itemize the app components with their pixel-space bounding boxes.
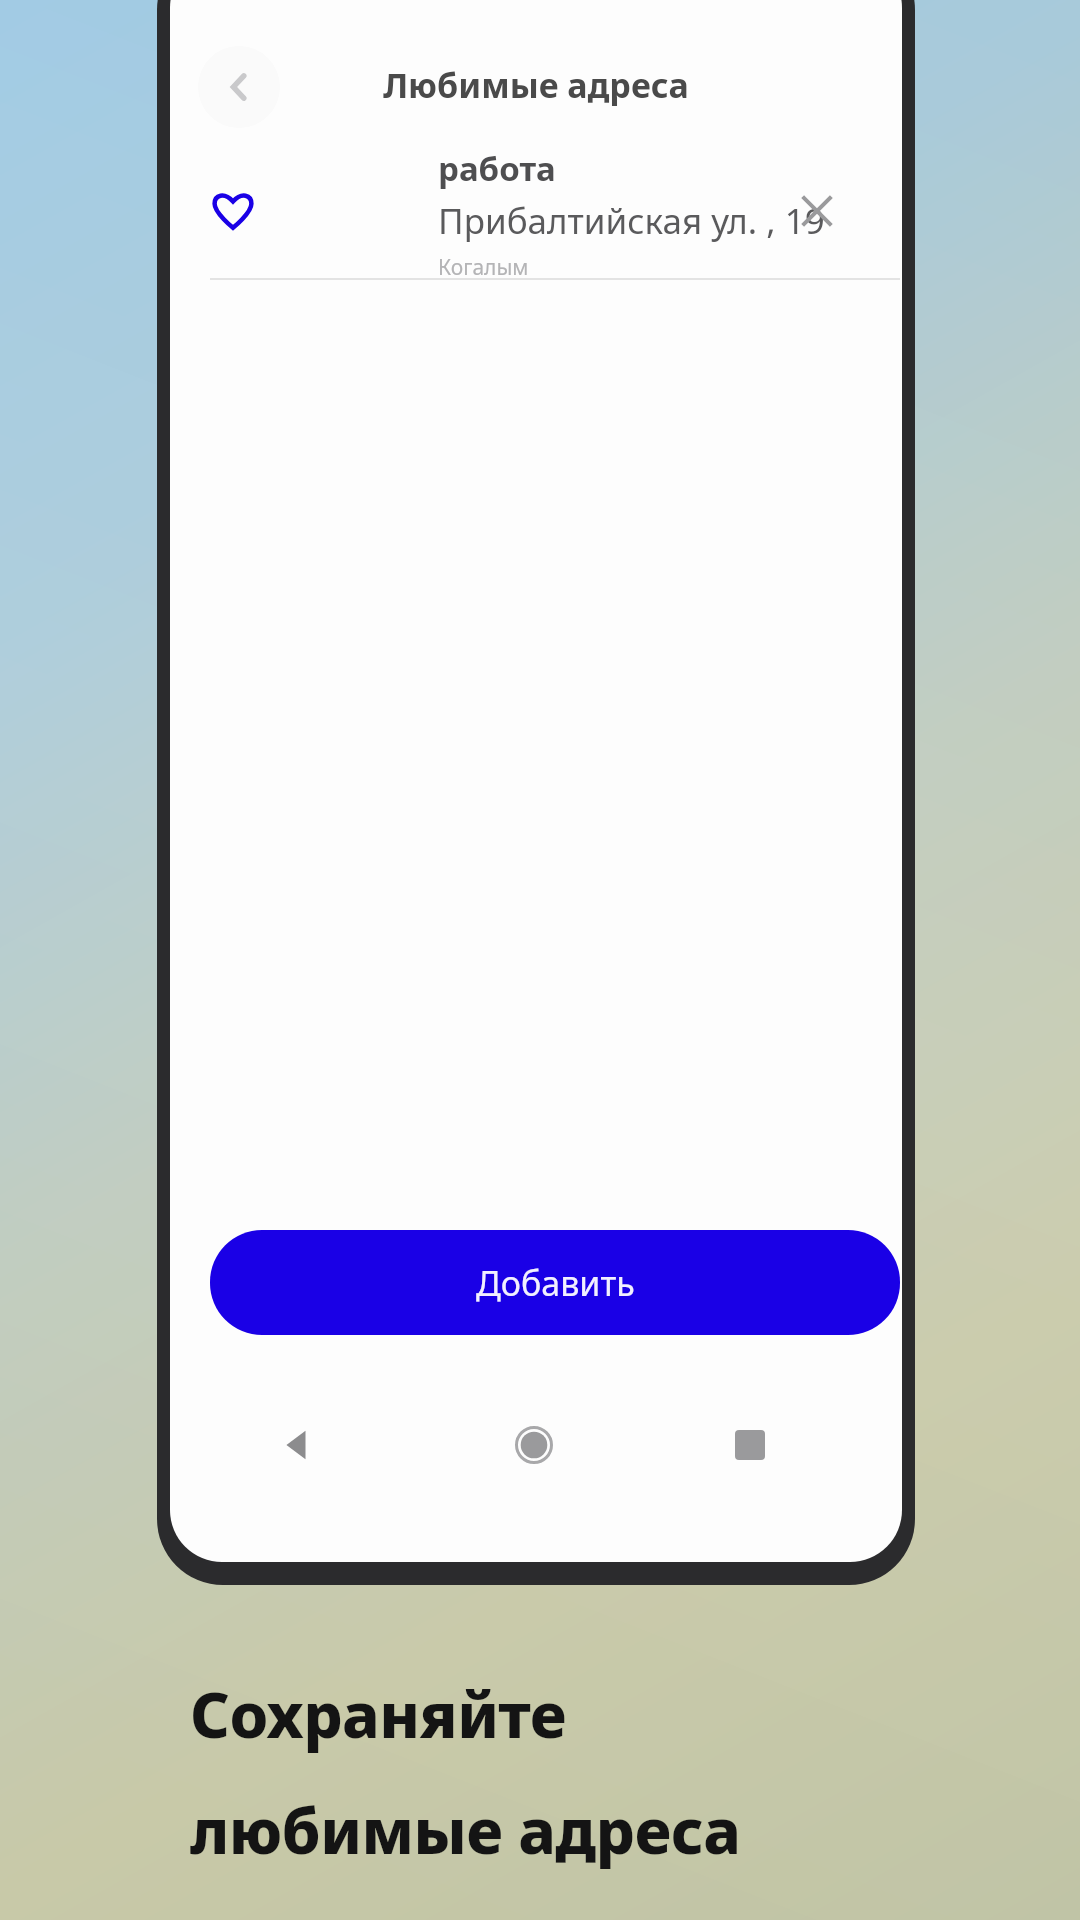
button[interactable]: Добавить (210, 1230, 900, 1335)
staticText: Любимые адреса (383, 62, 689, 108)
button[interactable]: Назад (170, 1390, 426, 1500)
button[interactable]: Удалить (782, 176, 852, 246)
staticText: работа (438, 146, 556, 191)
button[interactable]: работа (170, 140, 902, 280)
staticText: Когалым (438, 253, 529, 282)
staticText: Сохраняйте (190, 1672, 567, 1756)
button[interactable]: Недавние (642, 1390, 858, 1500)
staticText: Прибалтийская ул. , 19 (438, 197, 825, 245)
staticText: любимые адреса (190, 1788, 741, 1872)
button[interactable]: Главная (426, 1390, 642, 1500)
button[interactable]: Назад (198, 46, 280, 128)
staticText: Добавить (476, 1260, 635, 1306)
